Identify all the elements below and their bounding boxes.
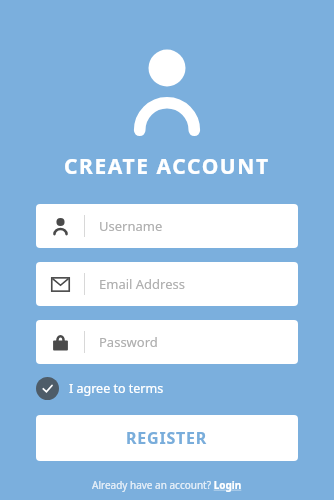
button[interactable]: REGISTER bbox=[36, 415, 298, 461]
button[interactable]: Username bbox=[36, 204, 298, 248]
staticText: REGISTER bbox=[126, 427, 208, 449]
staticText: CREATE ACCOUNT bbox=[64, 152, 270, 181]
staticText: Email Address bbox=[99, 275, 185, 293]
staticText: I agree to terms bbox=[69, 380, 164, 397]
button[interactable]: Password bbox=[36, 320, 298, 364]
staticText: Already have an account? Login bbox=[92, 478, 242, 492]
button[interactable]: Already have an account? Login bbox=[92, 478, 242, 500]
button[interactable]: I agree to terms bbox=[36, 377, 164, 400]
staticText: Password bbox=[99, 333, 158, 351]
button[interactable]: Email Address bbox=[36, 262, 298, 306]
staticText: Username bbox=[99, 217, 163, 235]
